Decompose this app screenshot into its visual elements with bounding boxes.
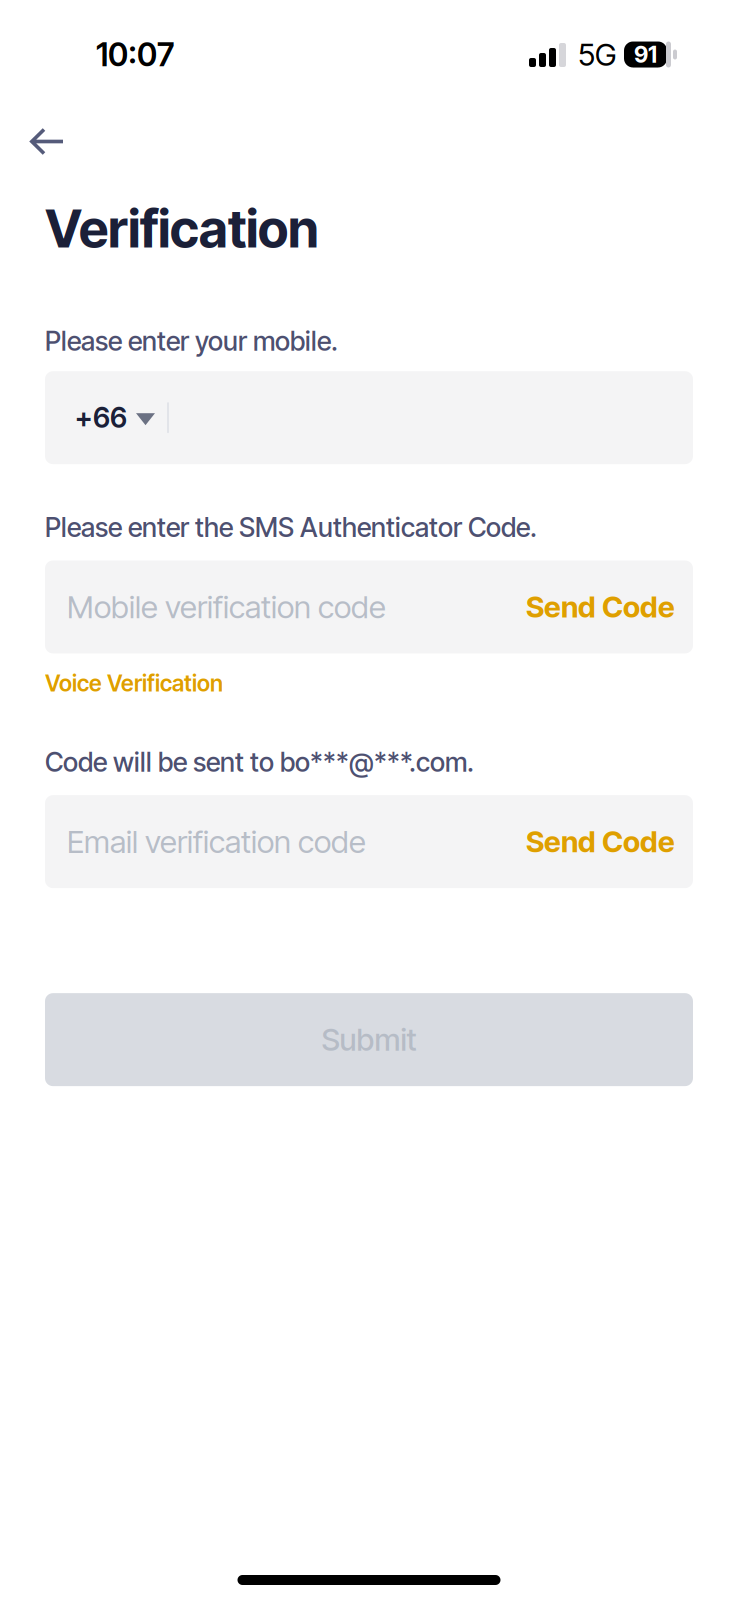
button[interactable]: +66	[75, 383, 161, 453]
button[interactable]: Send Code	[502, 798, 675, 885]
staticText: 5G	[578, 36, 616, 73]
staticText: Send Code	[526, 589, 675, 625]
button[interactable]: Mobile verification code	[67, 562, 502, 652]
staticText: Verification	[45, 197, 319, 260]
button[interactable]: Back	[14, 109, 80, 175]
button[interactable]: Email verification code	[67, 797, 502, 887]
staticText: Please enter the SMS Authenticator Code.	[45, 511, 537, 543]
staticText: Mobile verification code	[67, 588, 386, 626]
button[interactable]: Submit	[45, 993, 693, 1086]
staticText: Email verification code	[67, 823, 366, 861]
staticText: Voice Verification	[45, 669, 223, 697]
staticText: 91	[634, 41, 657, 68]
staticText: Code will be sent to bo***@***.com.	[45, 746, 474, 778]
staticText: Send Code	[526, 824, 675, 859]
button[interactable]: Send Code	[502, 563, 675, 651]
staticText: Please enter your mobile.	[45, 325, 338, 357]
button[interactable]: Voice Verification	[45, 661, 223, 705]
staticText: +66	[75, 401, 127, 435]
staticText: 10:07	[96, 35, 174, 74]
staticText: Submit	[321, 1021, 416, 1058]
